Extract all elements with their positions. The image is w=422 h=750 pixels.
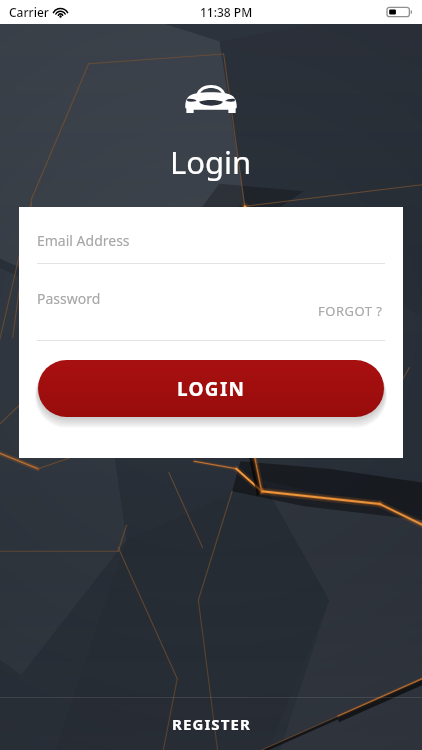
- button[interactable]: Email Address: [37, 217, 385, 263]
- staticText: LOGIN: [177, 376, 246, 402]
- staticText: REGISTER: [172, 714, 251, 734]
- staticText: Email Address: [37, 231, 130, 250]
- other: App logo: [183, 80, 239, 113]
- button[interactable]: Password: [37, 285, 385, 311]
- button[interactable]: LOGIN: [38, 360, 384, 417]
- staticText: Password: [37, 289, 101, 308]
- button[interactable]: FORGOT ?: [316, 299, 385, 323]
- staticText: 11:38 PM: [200, 4, 253, 20]
- staticText: FORGOT ?: [318, 302, 383, 320]
- staticText: Carrier: [9, 4, 49, 20]
- button[interactable]: REGISTER: [0, 698, 422, 750]
- staticText: Login: [170, 141, 252, 183]
